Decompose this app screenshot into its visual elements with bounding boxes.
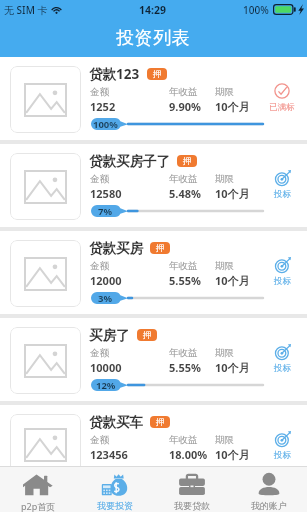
staticText: 10个月 — [215, 360, 250, 375]
staticText: 123456 — [90, 447, 128, 462]
staticText: 期限 — [215, 434, 234, 446]
staticText: 金额 — [90, 86, 109, 98]
staticText: 年收益 — [169, 86, 198, 98]
staticText: 年收益 — [169, 434, 198, 446]
staticText: 金额 — [90, 173, 109, 185]
button[interactable]: 已满标 — [264, 83, 300, 119]
staticText: 我要投资 — [97, 500, 133, 511]
staticText: 贷款123 — [89, 65, 140, 83]
staticText: 年收益 — [169, 173, 198, 185]
staticText: 期限 — [215, 173, 234, 185]
staticText: 贷款买房子了 — [89, 153, 170, 170]
button[interactable]: 我的账户 — [230, 467, 307, 512]
staticText: 12580 — [90, 186, 122, 201]
staticText: 我要贷款 — [174, 500, 210, 511]
staticText: 押 — [183, 156, 192, 167]
button[interactable]: 我要贷款 — [153, 467, 230, 512]
staticText: 5.48% — [169, 186, 201, 201]
staticText: 投标 — [274, 450, 291, 461]
staticText: 9.90% — [169, 99, 201, 114]
staticText: 1252 — [90, 99, 116, 114]
staticText: 年收益 — [169, 260, 198, 272]
staticText: 5.55% — [169, 273, 201, 288]
staticText: 期限 — [215, 347, 234, 359]
staticText: 投资列表 — [116, 27, 191, 50]
button[interactable]: 买房了 — [0, 318, 307, 401]
button[interactable]: 贷款买房子了 — [0, 144, 307, 227]
staticText: 我的账户 — [251, 500, 287, 511]
staticText: 5.55% — [169, 360, 201, 375]
staticText: 100% — [243, 3, 269, 17]
staticText: 10个月 — [215, 99, 250, 114]
button[interactable]: 投标 — [264, 257, 300, 293]
staticText: p2p首页 — [21, 500, 56, 512]
button[interactable]: 贷款买房 — [0, 231, 307, 314]
staticText: 14:29 — [139, 3, 166, 17]
button[interactable]: 投标 — [264, 170, 300, 206]
staticText: 押 — [153, 69, 162, 80]
button[interactable]: 贷款买车 — [0, 405, 307, 466]
staticText: 已满标 — [269, 102, 295, 113]
staticText: 金额 — [90, 260, 109, 272]
staticText: 押 — [156, 243, 165, 254]
staticText: 7% — [98, 205, 113, 217]
staticText: 年收益 — [169, 347, 198, 359]
staticText: 押 — [156, 417, 165, 428]
button[interactable]: 我要投资 — [76, 467, 153, 512]
staticText: 12% — [96, 379, 116, 391]
staticText: 无 SIM 卡 — [4, 3, 48, 17]
staticText: 100% — [93, 118, 118, 130]
staticText: 3% — [98, 292, 113, 304]
button[interactable]: p2p首页 — [0, 467, 76, 512]
staticText: 投标 — [274, 189, 291, 200]
staticText: 期限 — [215, 86, 234, 98]
staticText: 买房了 — [89, 327, 130, 344]
staticText: 押 — [143, 330, 152, 341]
staticText: 10个月 — [215, 186, 250, 201]
staticText: 贷款买房 — [89, 240, 143, 257]
staticText: 投标 — [274, 276, 291, 287]
staticText: 金额 — [90, 434, 109, 446]
staticText: 贷款买车 — [89, 414, 143, 431]
staticText: 13% — [96, 466, 116, 478]
staticText: 期限 — [215, 260, 234, 272]
staticText: 金额 — [90, 347, 109, 359]
staticText: 12000 — [90, 273, 122, 288]
staticText: 10000 — [90, 360, 122, 375]
staticText: 10个月 — [215, 447, 250, 462]
staticText: 投标 — [274, 363, 291, 374]
button[interactable]: 贷款123 — [0, 57, 307, 140]
button[interactable]: 投标 — [264, 431, 300, 467]
staticText: 18.00% — [169, 447, 208, 462]
button[interactable]: 投标 — [264, 344, 300, 380]
staticText: 10个月 — [215, 273, 250, 288]
